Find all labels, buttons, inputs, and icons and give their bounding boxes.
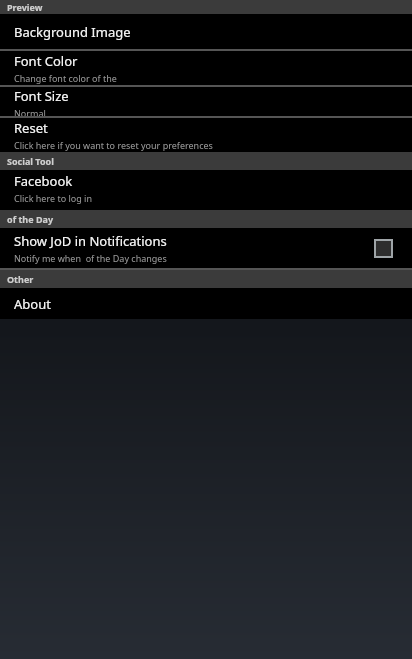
staticText: Social Tool (7, 155, 54, 167)
staticText: Click here if you want to reset your pre… (14, 139, 213, 151)
staticText: Font Size (14, 87, 69, 105)
staticText: Preview (7, 1, 43, 13)
staticText: Normal (14, 107, 46, 116)
button[interactable]: Facebook (0, 170, 412, 206)
button[interactable]: Font Color (0, 51, 412, 85)
staticText: Change font color of the (14, 72, 117, 84)
staticText: Show JoD in Notifications (14, 232, 167, 250)
button[interactable]: Show JoD in Notifications (0, 228, 412, 268)
staticText: Notify me when of the Day changes (14, 252, 167, 264)
staticText: Reset (14, 119, 48, 137)
staticText: Other (7, 273, 34, 285)
button[interactable]: Background Image (0, 14, 412, 49)
button[interactable]: Toggle show JoD in notifications (368, 233, 398, 263)
button[interactable]: Reset (0, 118, 412, 152)
staticText: Click here to log in (14, 192, 92, 204)
staticText: Facebook (14, 172, 73, 190)
staticText: Font Color (14, 52, 78, 70)
staticText: Background Image (14, 23, 131, 41)
staticText: of the Day (7, 213, 54, 225)
button[interactable]: About (0, 288, 412, 319)
staticText: About (14, 295, 51, 313)
button[interactable]: Font Size (0, 87, 412, 116)
